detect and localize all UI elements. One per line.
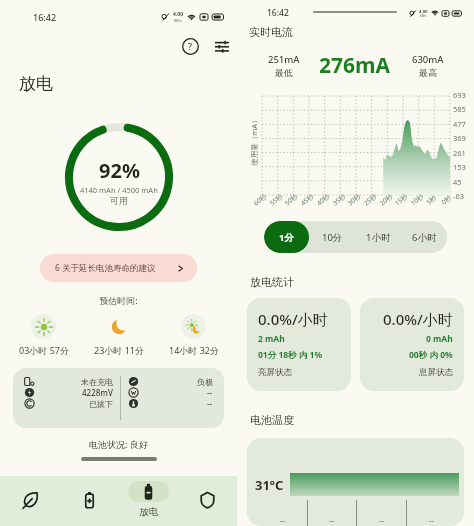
staticText: 放电 bbox=[19, 73, 53, 94]
staticText: 55秒 bbox=[268, 192, 284, 207]
staticText: 10秒 bbox=[409, 192, 425, 207]
staticText: 0 mAh bbox=[426, 333, 453, 345]
staticText: 369 bbox=[453, 133, 466, 143]
staticText: 电池状况: 良好 bbox=[0, 438, 237, 450]
button[interactable]: 1分 bbox=[264, 221, 309, 253]
staticText: 23小时 11分 bbox=[94, 344, 144, 356]
button[interactable]: 放电 bbox=[119, 476, 178, 526]
staticText: KB/s bbox=[174, 18, 182, 23]
staticText: 261 bbox=[453, 148, 466, 158]
staticText: 使用量（mA） bbox=[249, 113, 259, 169]
staticText: 1小时 bbox=[366, 231, 391, 244]
button[interactable]: Help bbox=[178, 34, 202, 58]
staticText: 31ºC bbox=[255, 476, 284, 494]
staticText: -- bbox=[207, 398, 213, 409]
button[interactable]: 1小时 bbox=[355, 221, 401, 253]
staticText: 可用 bbox=[110, 195, 128, 206]
staticText: 20秒 bbox=[378, 192, 394, 207]
button[interactable]: Charge bbox=[60, 476, 119, 526]
staticText: 10分 bbox=[322, 231, 343, 244]
staticText: 4140 mAh / 4500 mAh bbox=[80, 185, 158, 195]
staticText: 电池温度 bbox=[250, 413, 294, 427]
button[interactable]: 6 关于延长电池寿命的建议 bbox=[40, 254, 197, 282]
button[interactable]: 10分 bbox=[309, 221, 355, 253]
staticText: 4228mV bbox=[82, 387, 113, 398]
staticText: 03小时 57分 bbox=[19, 344, 69, 356]
staticText: -- bbox=[207, 387, 213, 398]
staticText: 1分 bbox=[279, 231, 294, 244]
button[interactable]: Protection bbox=[178, 476, 237, 526]
staticText: 00秒 内 0% bbox=[409, 349, 453, 361]
staticText: 最高 bbox=[419, 67, 437, 78]
staticText: 0秒 bbox=[439, 192, 454, 206]
staticText: 153 bbox=[453, 162, 466, 172]
button[interactable]: 6小时 bbox=[401, 221, 447, 253]
staticText: 放电 bbox=[139, 506, 158, 518]
staticText: 实时电流 bbox=[249, 25, 293, 39]
staticText: 40秒 bbox=[315, 192, 331, 207]
button[interactable]: 0.0%/小时 bbox=[247, 298, 351, 391]
staticText: 25秒 bbox=[362, 192, 378, 207]
staticText: 0.0%/小时 bbox=[383, 309, 453, 329]
staticText: 251mA bbox=[268, 53, 300, 66]
staticText: 45秒 bbox=[299, 192, 315, 207]
staticText: ? bbox=[188, 40, 193, 52]
staticText: 6小时 bbox=[412, 231, 437, 244]
staticText: 预估时间: bbox=[0, 294, 237, 306]
staticText: 45 bbox=[453, 177, 462, 187]
staticText: 01分 18秒 内 1% bbox=[258, 349, 323, 361]
staticText: 477 bbox=[453, 119, 466, 129]
staticText: 630mA bbox=[412, 53, 444, 66]
staticText: 30秒 bbox=[346, 192, 362, 207]
staticText: 放电统计 bbox=[250, 275, 294, 289]
staticText: 35秒 bbox=[331, 192, 347, 207]
staticText: -- bbox=[429, 515, 435, 526]
staticText: 2 mAh bbox=[258, 333, 285, 345]
staticText: 92% bbox=[99, 157, 140, 184]
staticText: 276mA bbox=[319, 51, 391, 80]
button[interactable]: 0.0%/小时 bbox=[360, 298, 464, 391]
staticText: 0.0%/小时 bbox=[258, 309, 328, 329]
button[interactable]: Eco bbox=[0, 476, 60, 526]
staticText: 未在充电 bbox=[81, 377, 113, 387]
staticText: 负极 bbox=[197, 377, 213, 387]
staticText: -63 bbox=[453, 191, 464, 201]
staticText: 亮屏状态 bbox=[258, 367, 292, 378]
staticText: 14小时 32分 bbox=[169, 344, 219, 356]
staticText: 6 关于延长电池寿命的建议 bbox=[55, 262, 156, 274]
staticText: 585 bbox=[453, 104, 466, 114]
staticText: 15秒 bbox=[393, 192, 409, 207]
staticText: 最低 bbox=[275, 67, 293, 78]
staticText: -- bbox=[280, 515, 286, 526]
staticText: 16:42 bbox=[33, 11, 57, 23]
staticText: 5秒 bbox=[424, 192, 439, 206]
staticText: 693 bbox=[453, 90, 466, 100]
staticText: -- bbox=[379, 515, 385, 526]
staticText: 50秒 bbox=[283, 192, 299, 207]
staticText: 已拔下 bbox=[89, 399, 113, 409]
staticText: 4.00 bbox=[419, 8, 428, 14]
staticText: 4.00 bbox=[173, 11, 183, 18]
button[interactable]: Settings bbox=[210, 34, 234, 58]
staticText: -- bbox=[329, 515, 335, 526]
staticText: 60秒 bbox=[252, 192, 268, 207]
staticText: 息屏状态 bbox=[419, 367, 453, 378]
staticText: 16:42 bbox=[267, 7, 289, 19]
staticText: KB/s bbox=[420, 14, 427, 18]
